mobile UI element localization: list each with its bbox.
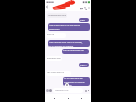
staticText: Salut ? [80,64,87,67]
staticText: Soit de provoquer les crises [63,49,88,54]
button[interactable]: Salut ? [79,63,89,67]
button[interactable]: Add [46,89,49,92]
button[interactable]: Send [87,89,90,92]
staticText: Appointment time [48,14,66,17]
staticText: Mais il faut que tu te sois pris le trai… [49,24,80,30]
button[interactable]: Message SMS [53,88,83,93]
button[interactable]: Appointment time [47,13,67,18]
button[interactable]: Back [51,95,58,102]
button[interactable]: Recent apps [78,95,85,102]
button[interactable]: Les crises que j ai avant [46,71,71,76]
button[interactable]: Home [65,95,72,102]
staticText: Salut [80,19,85,22]
button[interactable]: Expliquez moi [46,56,62,61]
button[interactable]: C'est difficile pour nous le monde, et s… [48,40,90,47]
staticText: Tu as bien prise les mediocres et chaque… [64,77,89,86]
button[interactable]: Soit de provoquer les crises [62,49,89,54]
button[interactable]: Pour le redescendre ? [46,33,66,38]
button[interactable]: Call [83,6,87,10]
staticText: Les crises que j ai avant [47,71,70,76]
button[interactable]: Mais il faut que tu te sois pris le trai… [48,23,90,31]
button[interactable]: Camera [49,89,52,92]
staticText: Pour le redescendre ? [47,33,65,38]
button[interactable]: Video call [79,6,83,10]
button[interactable]: Back [45,5,49,9]
button[interactable]: More options [87,6,90,9]
staticText: C'est difficile pour nous le monde, et s… [49,41,83,47]
button[interactable]: Tu as bien prise les mediocres et chaque… [63,77,90,86]
staticText: Expliquez moi [47,57,61,60]
staticText: Message SMS [55,89,69,92]
button[interactable]: Emoji [84,89,87,92]
button[interactable]: Salut [79,18,89,22]
